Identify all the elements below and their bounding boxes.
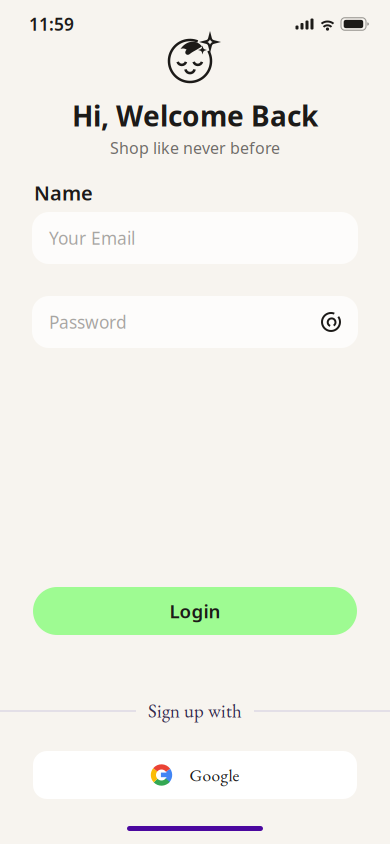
staticText: 11:59 [29,12,74,35]
staticText: Hi, Welcome Back [72,97,318,134]
button[interactable]: Google [33,751,357,799]
button[interactable]: Login [33,587,357,635]
staticText: Login [169,599,220,623]
staticText: Your Email [49,226,135,249]
button[interactable]: Password [32,296,358,348]
staticText: Name [34,179,93,206]
staticText: Shop like never before [110,137,280,158]
staticText: Google [189,764,239,786]
staticText: Sign up with [148,699,242,723]
button[interactable]: Your Email [32,212,358,264]
staticText: Password [49,310,127,333]
